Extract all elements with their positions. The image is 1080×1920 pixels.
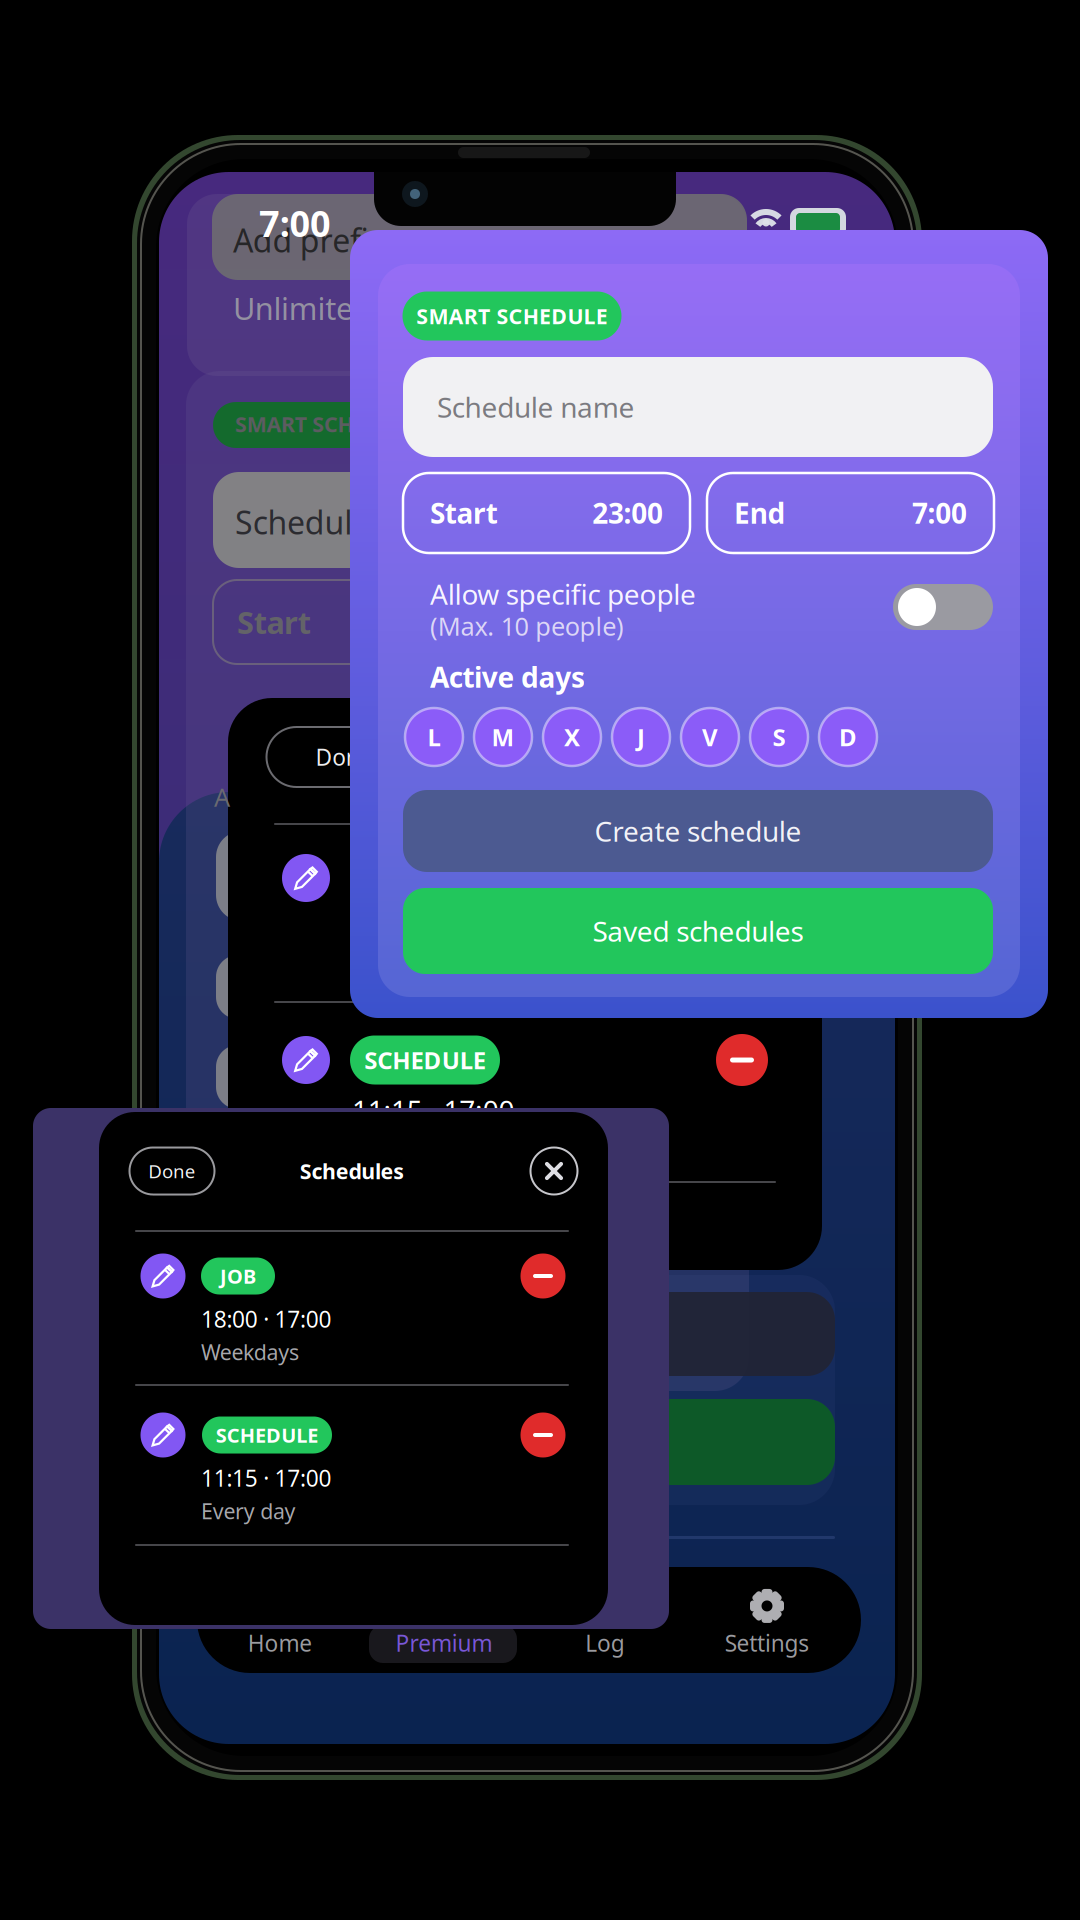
staticText: (Max. 10 people) — [430, 609, 624, 643]
staticText: M — [491, 721, 514, 753]
staticText: 11:15 · 17:00 — [201, 1463, 331, 1493]
staticText: 18:00 · 17:00 — [201, 1304, 331, 1334]
staticText: Every day — [201, 1497, 296, 1525]
staticText: Start — [430, 494, 498, 532]
button[interactable]: SMART SCHEDULE — [402, 291, 621, 340]
staticText: D — [839, 721, 857, 753]
button[interactable]: Premium — [364, 1573, 524, 1673]
staticText: Premium — [396, 1628, 492, 1658]
staticText: 23:00 — [592, 494, 663, 532]
button[interactable]: X — [543, 708, 601, 766]
staticText: SMART SCH — [235, 410, 354, 438]
button[interactable]: Schedule name — [403, 357, 993, 457]
button[interactable]: Close — [530, 1147, 577, 1194]
staticText: Unlimited — [233, 288, 372, 328]
staticText: S — [772, 721, 785, 753]
staticText: 7:00 — [912, 494, 967, 532]
staticText: Schedules — [300, 1157, 404, 1185]
staticText: Done — [148, 1159, 196, 1183]
button[interactable]: Done — [129, 1147, 214, 1194]
button[interactable]: Remove — [520, 1412, 565, 1457]
button[interactable]: S — [750, 708, 808, 766]
staticText: Home — [248, 1628, 312, 1658]
staticText: Done — [315, 742, 372, 772]
button[interactable]: Create schedule — [403, 790, 993, 872]
button[interactable]: Saved schedules — [403, 888, 993, 974]
staticText: 11:15 · 17:00 — [352, 1091, 514, 1129]
staticText: 7:00 — [259, 199, 331, 247]
staticText: Create schedule — [594, 812, 802, 850]
button[interactable]: L — [405, 708, 463, 766]
button[interactable]: Home — [200, 1573, 360, 1673]
button[interactable]: M — [474, 708, 532, 766]
button[interactable]: Edit — [140, 1253, 185, 1298]
staticText: Add prefi — [233, 219, 369, 261]
button[interactable]: JOB — [201, 1257, 275, 1294]
staticText: Log — [585, 1628, 625, 1658]
button[interactable]: End — [707, 473, 994, 553]
button[interactable]: D — [819, 708, 877, 766]
staticText: Saved schedules — [592, 912, 804, 950]
staticText: V — [702, 721, 718, 753]
button[interactable]: Start — [403, 473, 690, 553]
staticText: JOB — [220, 1263, 256, 1289]
button[interactable]: Settings — [687, 1573, 847, 1673]
staticText: Schedule name — [437, 388, 635, 426]
staticText: Weekdays — [201, 1338, 299, 1366]
staticText: L — [427, 721, 440, 753]
staticText: Start — [237, 602, 311, 642]
staticText: SCHEDULE — [216, 1422, 318, 1448]
staticText: Settings — [725, 1628, 809, 1658]
staticText: X — [564, 721, 580, 753]
button[interactable]: Log — [525, 1573, 685, 1673]
button[interactable]: Remove — [520, 1253, 565, 1298]
staticText: A — [214, 780, 230, 814]
button[interactable]: Allow specific people — [893, 584, 993, 630]
staticText: J — [637, 721, 645, 753]
staticText: Schedule — [235, 501, 370, 543]
staticText: Active days — [430, 658, 585, 696]
button[interactable]: SCHEDULE — [202, 1416, 332, 1453]
button[interactable]: V — [681, 708, 739, 766]
staticText: Allow specific people — [430, 575, 696, 613]
button[interactable]: Edit — [140, 1412, 185, 1457]
staticText: SMART SCHEDULE — [416, 302, 608, 330]
button[interactable]: J — [612, 708, 670, 766]
staticText: SCHEDULE — [364, 1044, 486, 1076]
staticText: End — [734, 494, 785, 532]
